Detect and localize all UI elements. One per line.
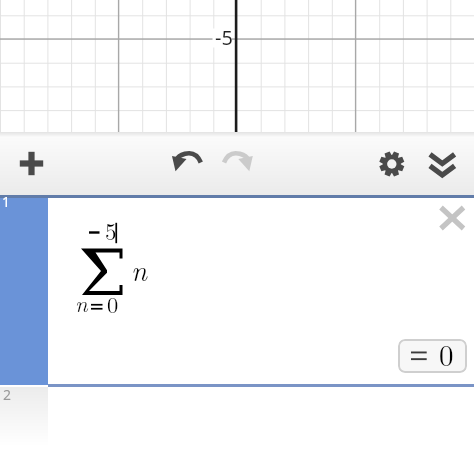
staticText: n [75, 287, 88, 319]
staticText: 0 [439, 333, 454, 374]
staticText: -5 [215, 24, 233, 51]
staticText: 1 [2, 192, 11, 211]
staticText: n [131, 249, 148, 289]
button[interactable] [398, 339, 467, 373]
button[interactable] [372, 144, 412, 184]
button[interactable] [219, 144, 259, 184]
button[interactable] [0, 198, 474, 385]
button[interactable] [422, 144, 462, 184]
staticText: 5 [105, 214, 117, 247]
button[interactable] [434, 200, 470, 236]
button[interactable] [167, 144, 207, 184]
staticText: 0 [107, 288, 119, 320]
button[interactable] [0, 387, 474, 474]
button[interactable] [12, 144, 52, 184]
staticText: 2 [3, 385, 12, 404]
